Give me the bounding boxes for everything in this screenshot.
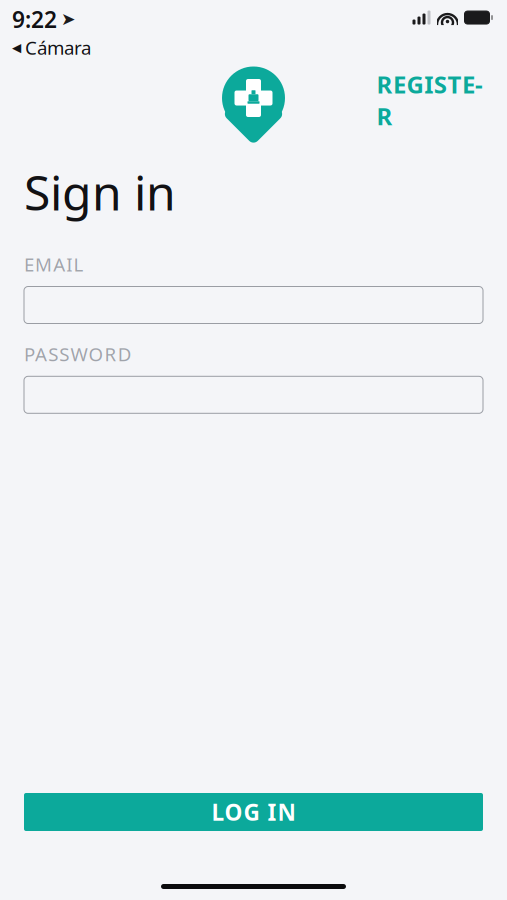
staticText: Sign in (24, 160, 176, 224)
staticText: Cámara (25, 35, 91, 60)
staticText: PASSWORD (24, 341, 132, 366)
staticText: 9:22 (12, 4, 57, 34)
staticText: ➤ (61, 9, 76, 29)
button[interactable]: Back to Cámara (12, 35, 91, 60)
button[interactable]: PASSWORD (24, 376, 483, 413)
staticText: ◀ (12, 41, 21, 54)
button[interactable]: REGISTER (376, 68, 483, 132)
staticText: EMAIL (24, 252, 83, 276)
staticText: REGISTER (376, 68, 483, 132)
staticText: LOG IN (211, 797, 295, 827)
button[interactable]: EMAIL (24, 286, 483, 323)
button[interactable]: LOG IN (24, 793, 483, 831)
